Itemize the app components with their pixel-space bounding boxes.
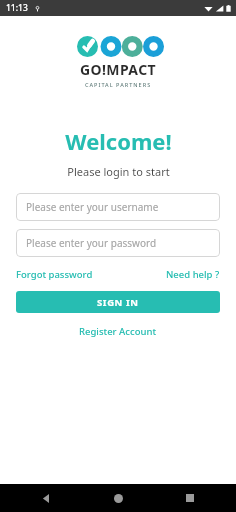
staticText: Welcome! bbox=[65, 126, 172, 156]
staticText: Forgot password bbox=[16, 268, 93, 281]
staticText: Please enter your username bbox=[26, 200, 159, 214]
button[interactable]: Need help ? bbox=[166, 266, 220, 283]
button[interactable]: Register Account bbox=[75, 323, 161, 340]
staticText: CAPITAL PARTNERS bbox=[85, 81, 152, 88]
staticText: Please login to start bbox=[67, 164, 170, 179]
staticText: GO!MPACT bbox=[80, 60, 157, 79]
staticText: Please enter your password bbox=[26, 236, 157, 250]
button[interactable]: Forgot password bbox=[16, 266, 93, 283]
staticText: 11:13 bbox=[6, 2, 28, 14]
button[interactable]: Recent apps bbox=[178, 486, 202, 510]
button[interactable]: Back bbox=[34, 486, 58, 510]
button[interactable]: Please enter your username bbox=[16, 193, 220, 221]
button[interactable]: Home bbox=[106, 486, 130, 510]
staticText: Need help ? bbox=[166, 268, 220, 281]
button[interactable]: Please enter your password bbox=[16, 229, 220, 257]
staticText: Register Account bbox=[79, 325, 157, 338]
button[interactable]: SIGN IN bbox=[16, 291, 220, 313]
staticText: SIGN IN bbox=[97, 296, 139, 309]
